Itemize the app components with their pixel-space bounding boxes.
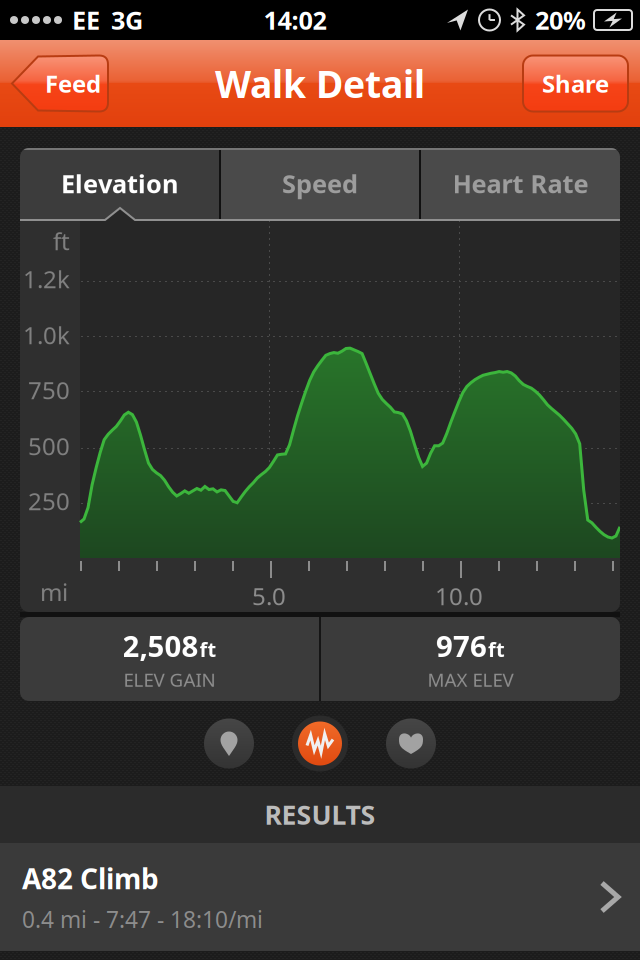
staticText: 750 (28, 374, 70, 406)
staticText: MAX ELEV (427, 667, 513, 692)
button[interactable]: Heart Rate (421, 148, 620, 219)
staticText: 20% (535, 3, 586, 37)
staticText: EE (72, 3, 100, 37)
staticText: 500 (28, 430, 70, 462)
button[interactable]: Share (523, 55, 628, 111)
staticText: 0.4 mi - 7:47 - 18:10/mi (22, 904, 263, 934)
button[interactable]: Elevation (20, 148, 219, 219)
button[interactable]: Map (204, 718, 254, 768)
staticText: 976 (436, 626, 487, 665)
staticText: Heart Rate (452, 167, 588, 200)
button[interactable]: A82 Climb (0, 843, 640, 951)
staticText: mi (40, 576, 68, 608)
staticText: 1.2k (23, 263, 70, 295)
staticText: ft (199, 636, 216, 662)
staticText: 250 (28, 485, 70, 517)
staticText: ELEV GAIN (123, 667, 215, 692)
button[interactable]: Speed (221, 148, 419, 219)
staticText: 2,508 (122, 626, 198, 665)
staticText: 3G (111, 3, 143, 37)
button[interactable]: Charts (292, 715, 348, 771)
button[interactable]: Heart rate (386, 718, 436, 768)
staticText: 5.0 (252, 580, 286, 612)
button[interactable]: Feed (12, 55, 108, 111)
staticText: Share (542, 68, 609, 99)
staticText: A82 Climb (22, 860, 159, 897)
staticText: Feed (45, 68, 101, 99)
staticText: Walk Detail (215, 59, 425, 108)
staticText: Elevation (61, 167, 178, 200)
staticText: 1.0k (23, 319, 70, 351)
staticText: ft (53, 225, 70, 257)
staticText: ft (488, 636, 505, 662)
staticText: Speed (282, 167, 358, 200)
staticText: RESULTS (264, 797, 375, 832)
staticText: 14:02 (263, 3, 326, 37)
staticText: 10.0 (435, 580, 483, 612)
